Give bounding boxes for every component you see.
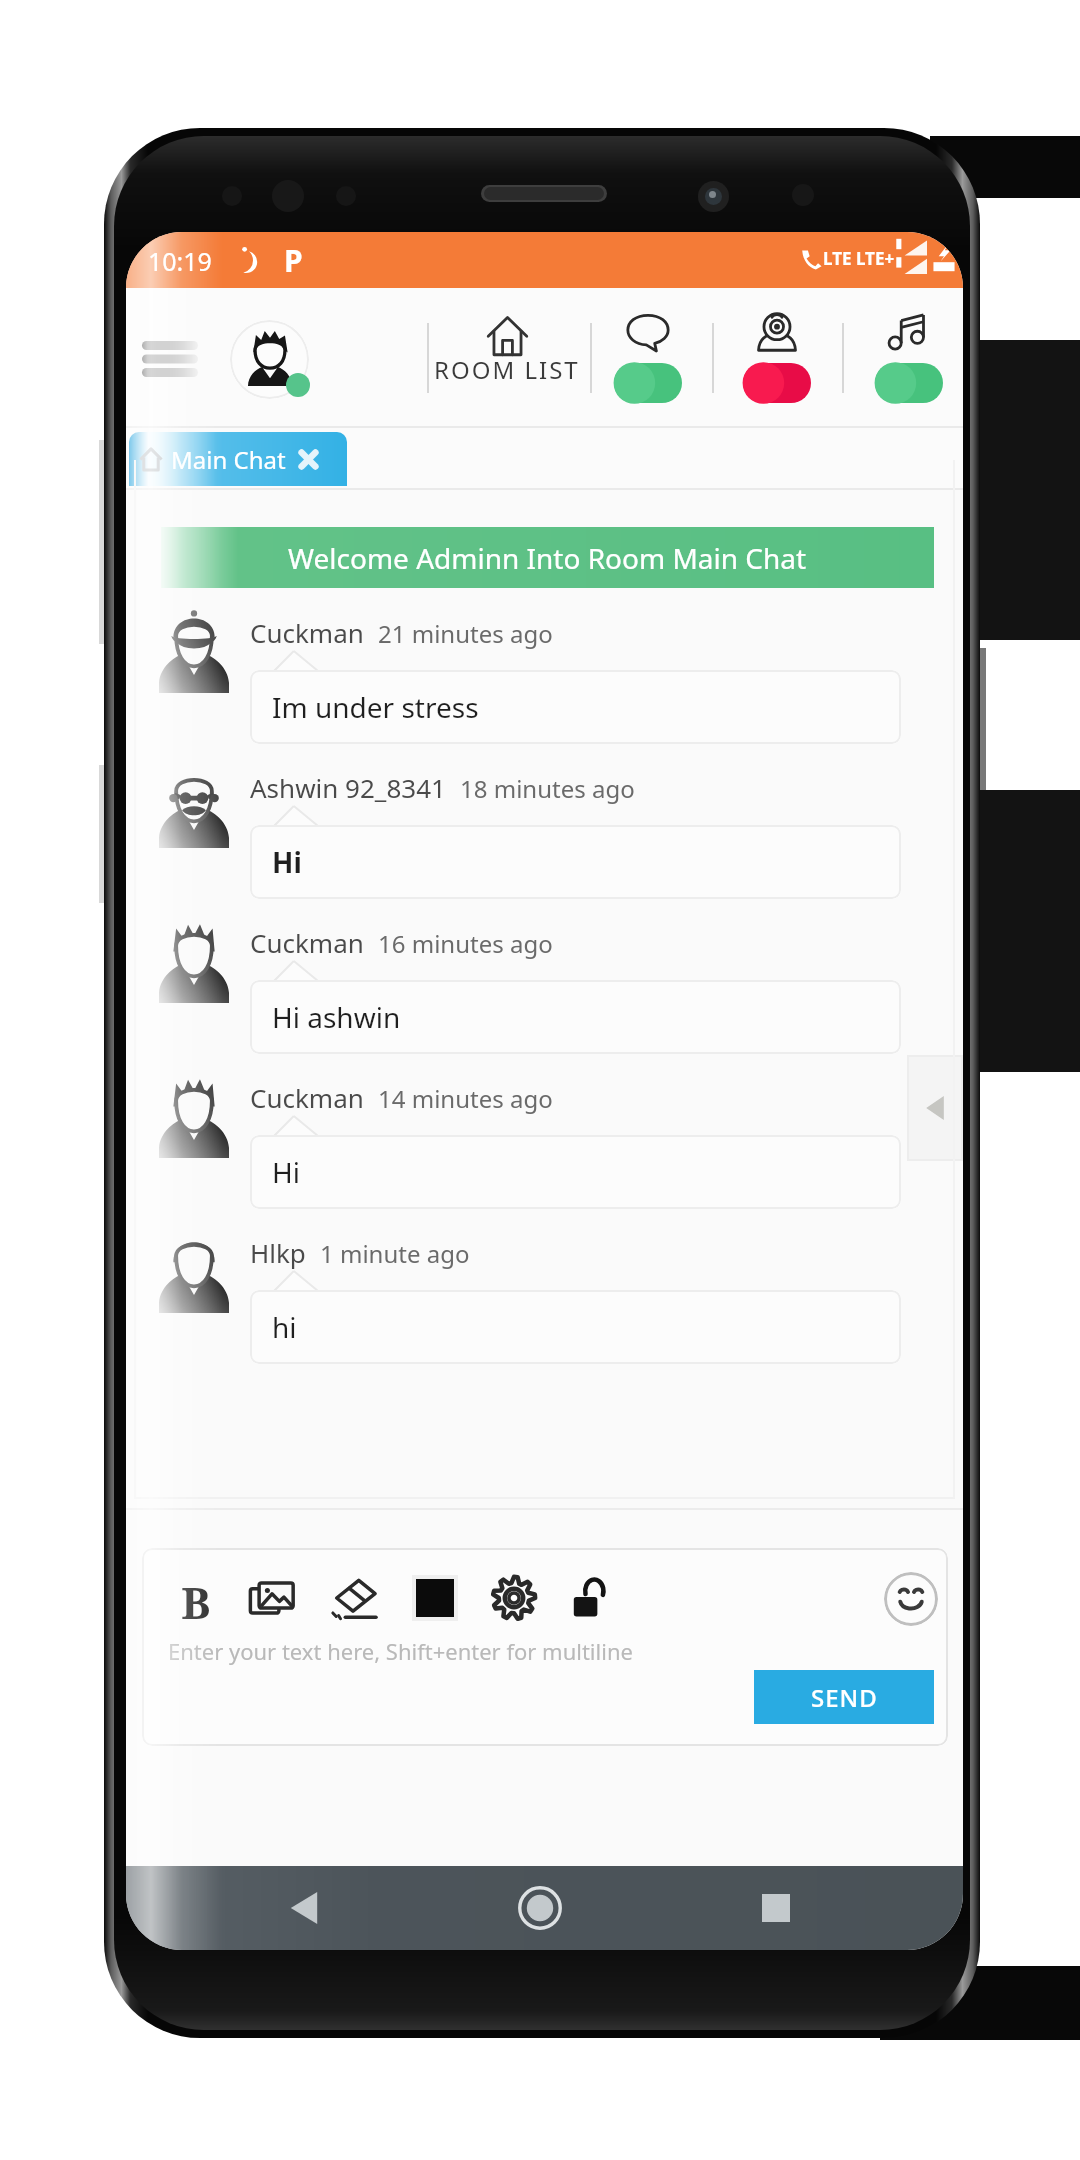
button[interactable]: Camera xyxy=(733,308,821,412)
staticText: Im under stress xyxy=(272,688,479,726)
staticText: 10:19 xyxy=(148,244,212,278)
button[interactable]: Recents xyxy=(736,1868,816,1948)
staticText: 16 minutes ago xyxy=(378,927,553,960)
staticText: Hi ashwin xyxy=(272,998,401,1036)
button[interactable]: Lock xyxy=(563,1572,615,1624)
button[interactable]: Open side panel xyxy=(907,1055,963,1161)
staticText: 18 minutes ago xyxy=(460,772,635,805)
button[interactable]: Home xyxy=(500,1868,580,1948)
button[interactable]: Profile xyxy=(230,320,322,412)
button[interactable]: Eraser xyxy=(327,1572,379,1624)
staticText: Main Chat xyxy=(171,443,286,476)
button[interactable]: Settings xyxy=(488,1572,540,1624)
button[interactable]: SEND xyxy=(754,1670,934,1724)
staticText: Hlkp xyxy=(250,1235,306,1270)
staticText: SEND xyxy=(811,1681,878,1714)
staticText: ROOM LIST xyxy=(434,353,580,386)
button[interactable]: Menu xyxy=(130,316,210,402)
staticText: Enter your text here, Shift+enter for mu… xyxy=(168,1636,633,1666)
button[interactable]: Bold xyxy=(170,1572,222,1624)
staticText: LTE LTE+ xyxy=(823,247,895,270)
button[interactable]: Emoji xyxy=(884,1572,938,1626)
staticText: Ashwin 92_8341 xyxy=(250,770,446,805)
staticText: Cuckman xyxy=(250,925,364,960)
staticText: hi xyxy=(272,1308,297,1346)
staticText: Welcome Adminn Into Room Main Chat xyxy=(288,539,807,577)
button[interactable]: Music xyxy=(865,308,953,412)
button[interactable]: Back xyxy=(264,1868,344,1948)
staticText: Cuckman xyxy=(250,1080,364,1115)
staticText: B xyxy=(181,1572,211,1624)
staticText: P xyxy=(284,240,303,281)
button[interactable]: Image xyxy=(246,1572,298,1624)
button[interactable]: Chat xyxy=(604,308,692,412)
button[interactable]: ROOM LIST xyxy=(427,312,587,392)
staticText: 21 minutes ago xyxy=(378,617,553,650)
staticText: Cuckman xyxy=(250,615,364,650)
staticText: 1 minute ago xyxy=(320,1237,470,1270)
staticText: Hi xyxy=(272,843,302,881)
button[interactable]: Main Chat xyxy=(129,432,347,486)
staticText: 14 minutes ago xyxy=(378,1082,553,1115)
button[interactable]: Colour xyxy=(409,1572,461,1624)
staticText: Hi xyxy=(272,1153,300,1191)
